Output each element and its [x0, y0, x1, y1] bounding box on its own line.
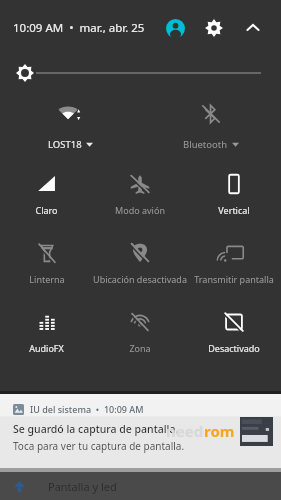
- button[interactable]: IU del sistema • 10:09 AM: [0, 394, 281, 468]
- button[interactable]: Transmitir pantalla: [187, 234, 281, 287]
- button[interactable]: Vertical: [187, 165, 281, 218]
- staticText: Ubicación desactivada: [93, 273, 187, 285]
- button[interactable]: Settings: [199, 13, 229, 43]
- button[interactable]: Ubicación desactivada: [93, 234, 187, 287]
- button[interactable]: Brightness: [16, 56, 261, 90]
- button[interactable]: Pantalla y led: [0, 472, 281, 500]
- button[interactable]: AudioFX: [0, 303, 93, 356]
- staticText: IU del sistema • 10:09 AM: [30, 403, 144, 415]
- staticText: Bluetooth: [183, 138, 228, 151]
- staticText: 10:09 AM • mar., abr. 25: [13, 20, 145, 36]
- staticText: Toca para ver tu captura de pantalla.: [13, 439, 185, 453]
- button[interactable]: Linterna: [0, 234, 93, 287]
- button[interactable]: User: [160, 13, 190, 43]
- button[interactable]: Modo avión: [93, 165, 187, 218]
- staticText: AudioFX: [29, 342, 64, 354]
- staticText: need: [166, 421, 204, 441]
- staticText: Pantalla y led: [48, 479, 117, 494]
- staticText: Vertical: [218, 204, 250, 216]
- button[interactable]: Bluetooth: [140, 96, 281, 151]
- staticText: LOST18: [48, 138, 82, 151]
- staticText: Se guardó la captura de pantalla.: [13, 422, 179, 436]
- button[interactable]: Collapse: [238, 13, 268, 43]
- staticText: Desactivado: [208, 342, 260, 354]
- button[interactable]: Desactivado: [187, 303, 281, 356]
- button[interactable]: Zona: [93, 303, 187, 356]
- staticText: Modo avión: [115, 204, 165, 216]
- staticText: Transmitir pantalla: [194, 273, 274, 285]
- staticText: Linterna: [29, 273, 65, 285]
- button[interactable]: Claro: [0, 165, 93, 218]
- staticText: Zona: [129, 342, 151, 354]
- staticText: Claro: [35, 204, 58, 216]
- button[interactable]: LOST18: [0, 96, 140, 151]
- staticText: rom: [204, 421, 235, 441]
